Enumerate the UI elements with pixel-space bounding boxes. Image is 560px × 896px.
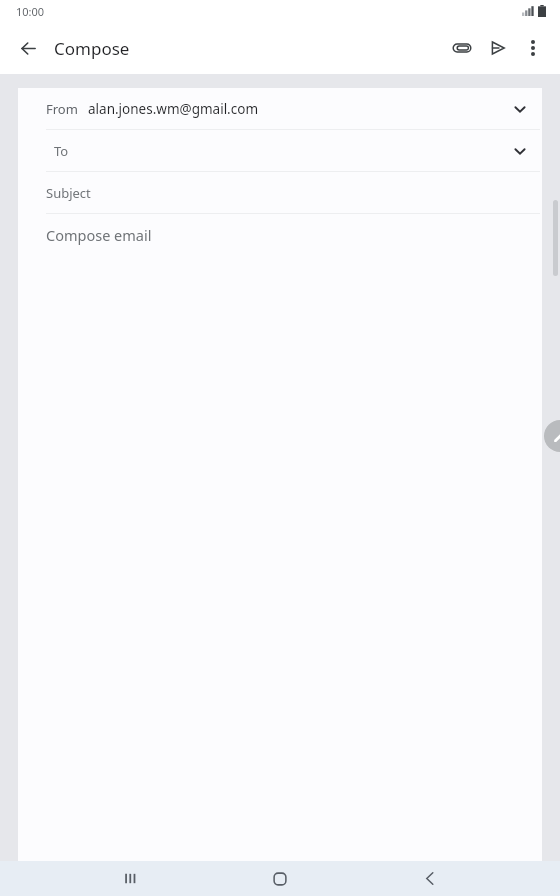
staticText: To — [54, 142, 69, 160]
staticText: Compose email — [46, 225, 152, 245]
button[interactable]: Recents — [110, 861, 150, 896]
button[interactable]: Back — [12, 32, 44, 64]
button[interactable]: From account selector — [18, 88, 542, 129]
button[interactable]: More options — [516, 31, 550, 65]
button[interactable]: Back — [410, 861, 450, 896]
staticText: Subject — [46, 184, 91, 202]
button[interactable]: To recipients — [18, 130, 542, 171]
button[interactable]: Attach file — [444, 30, 480, 66]
button[interactable]: Home — [260, 861, 300, 896]
staticText: 10:00 — [16, 4, 45, 19]
button[interactable]: Send — [480, 30, 516, 66]
staticText: From — [46, 100, 78, 118]
button[interactable]: Subject — [18, 172, 542, 213]
button[interactable]: Compose email — [18, 214, 542, 861]
staticText: Compose — [54, 37, 130, 60]
staticText: alan.jones.wm@gmail.com — [88, 100, 259, 118]
button[interactable]: Edit — [544, 420, 560, 452]
